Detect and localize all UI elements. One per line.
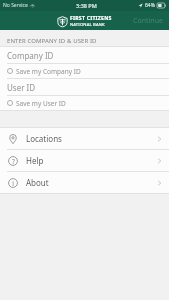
staticText: ?	[12, 157, 15, 166]
staticText: Company ID	[7, 50, 54, 61]
staticText: User ID	[7, 82, 36, 93]
staticText: i	[12, 179, 14, 188]
staticText: NATIONAL BANK	[70, 22, 105, 28]
staticText: No Service	[3, 2, 28, 9]
staticText: 3:38 PM	[76, 2, 97, 9]
staticText: Locations	[26, 133, 62, 144]
button[interactable]: User ID	[0, 79, 169, 95]
button[interactable]: Company ID	[0, 47, 169, 63]
staticText: Help	[26, 155, 44, 166]
staticText: Continue	[133, 16, 163, 26]
button[interactable]: Locations	[0, 128, 169, 149]
staticText: Save my User ID	[16, 99, 66, 108]
staticText: Save my Company ID	[16, 67, 81, 76]
button[interactable]: ?	[0, 150, 169, 171]
staticText: 64%	[145, 2, 155, 9]
button[interactable]: Continue	[127, 12, 169, 30]
button[interactable]: Save my User ID	[0, 96, 169, 110]
staticText: ENTER COMPANY ID & USER ID	[7, 37, 97, 45]
button[interactable]: i	[0, 172, 169, 193]
staticText: FIRST CITIZENS	[70, 14, 112, 21]
button[interactable]: Save my Company ID	[0, 64, 169, 78]
staticText: About	[26, 177, 49, 188]
